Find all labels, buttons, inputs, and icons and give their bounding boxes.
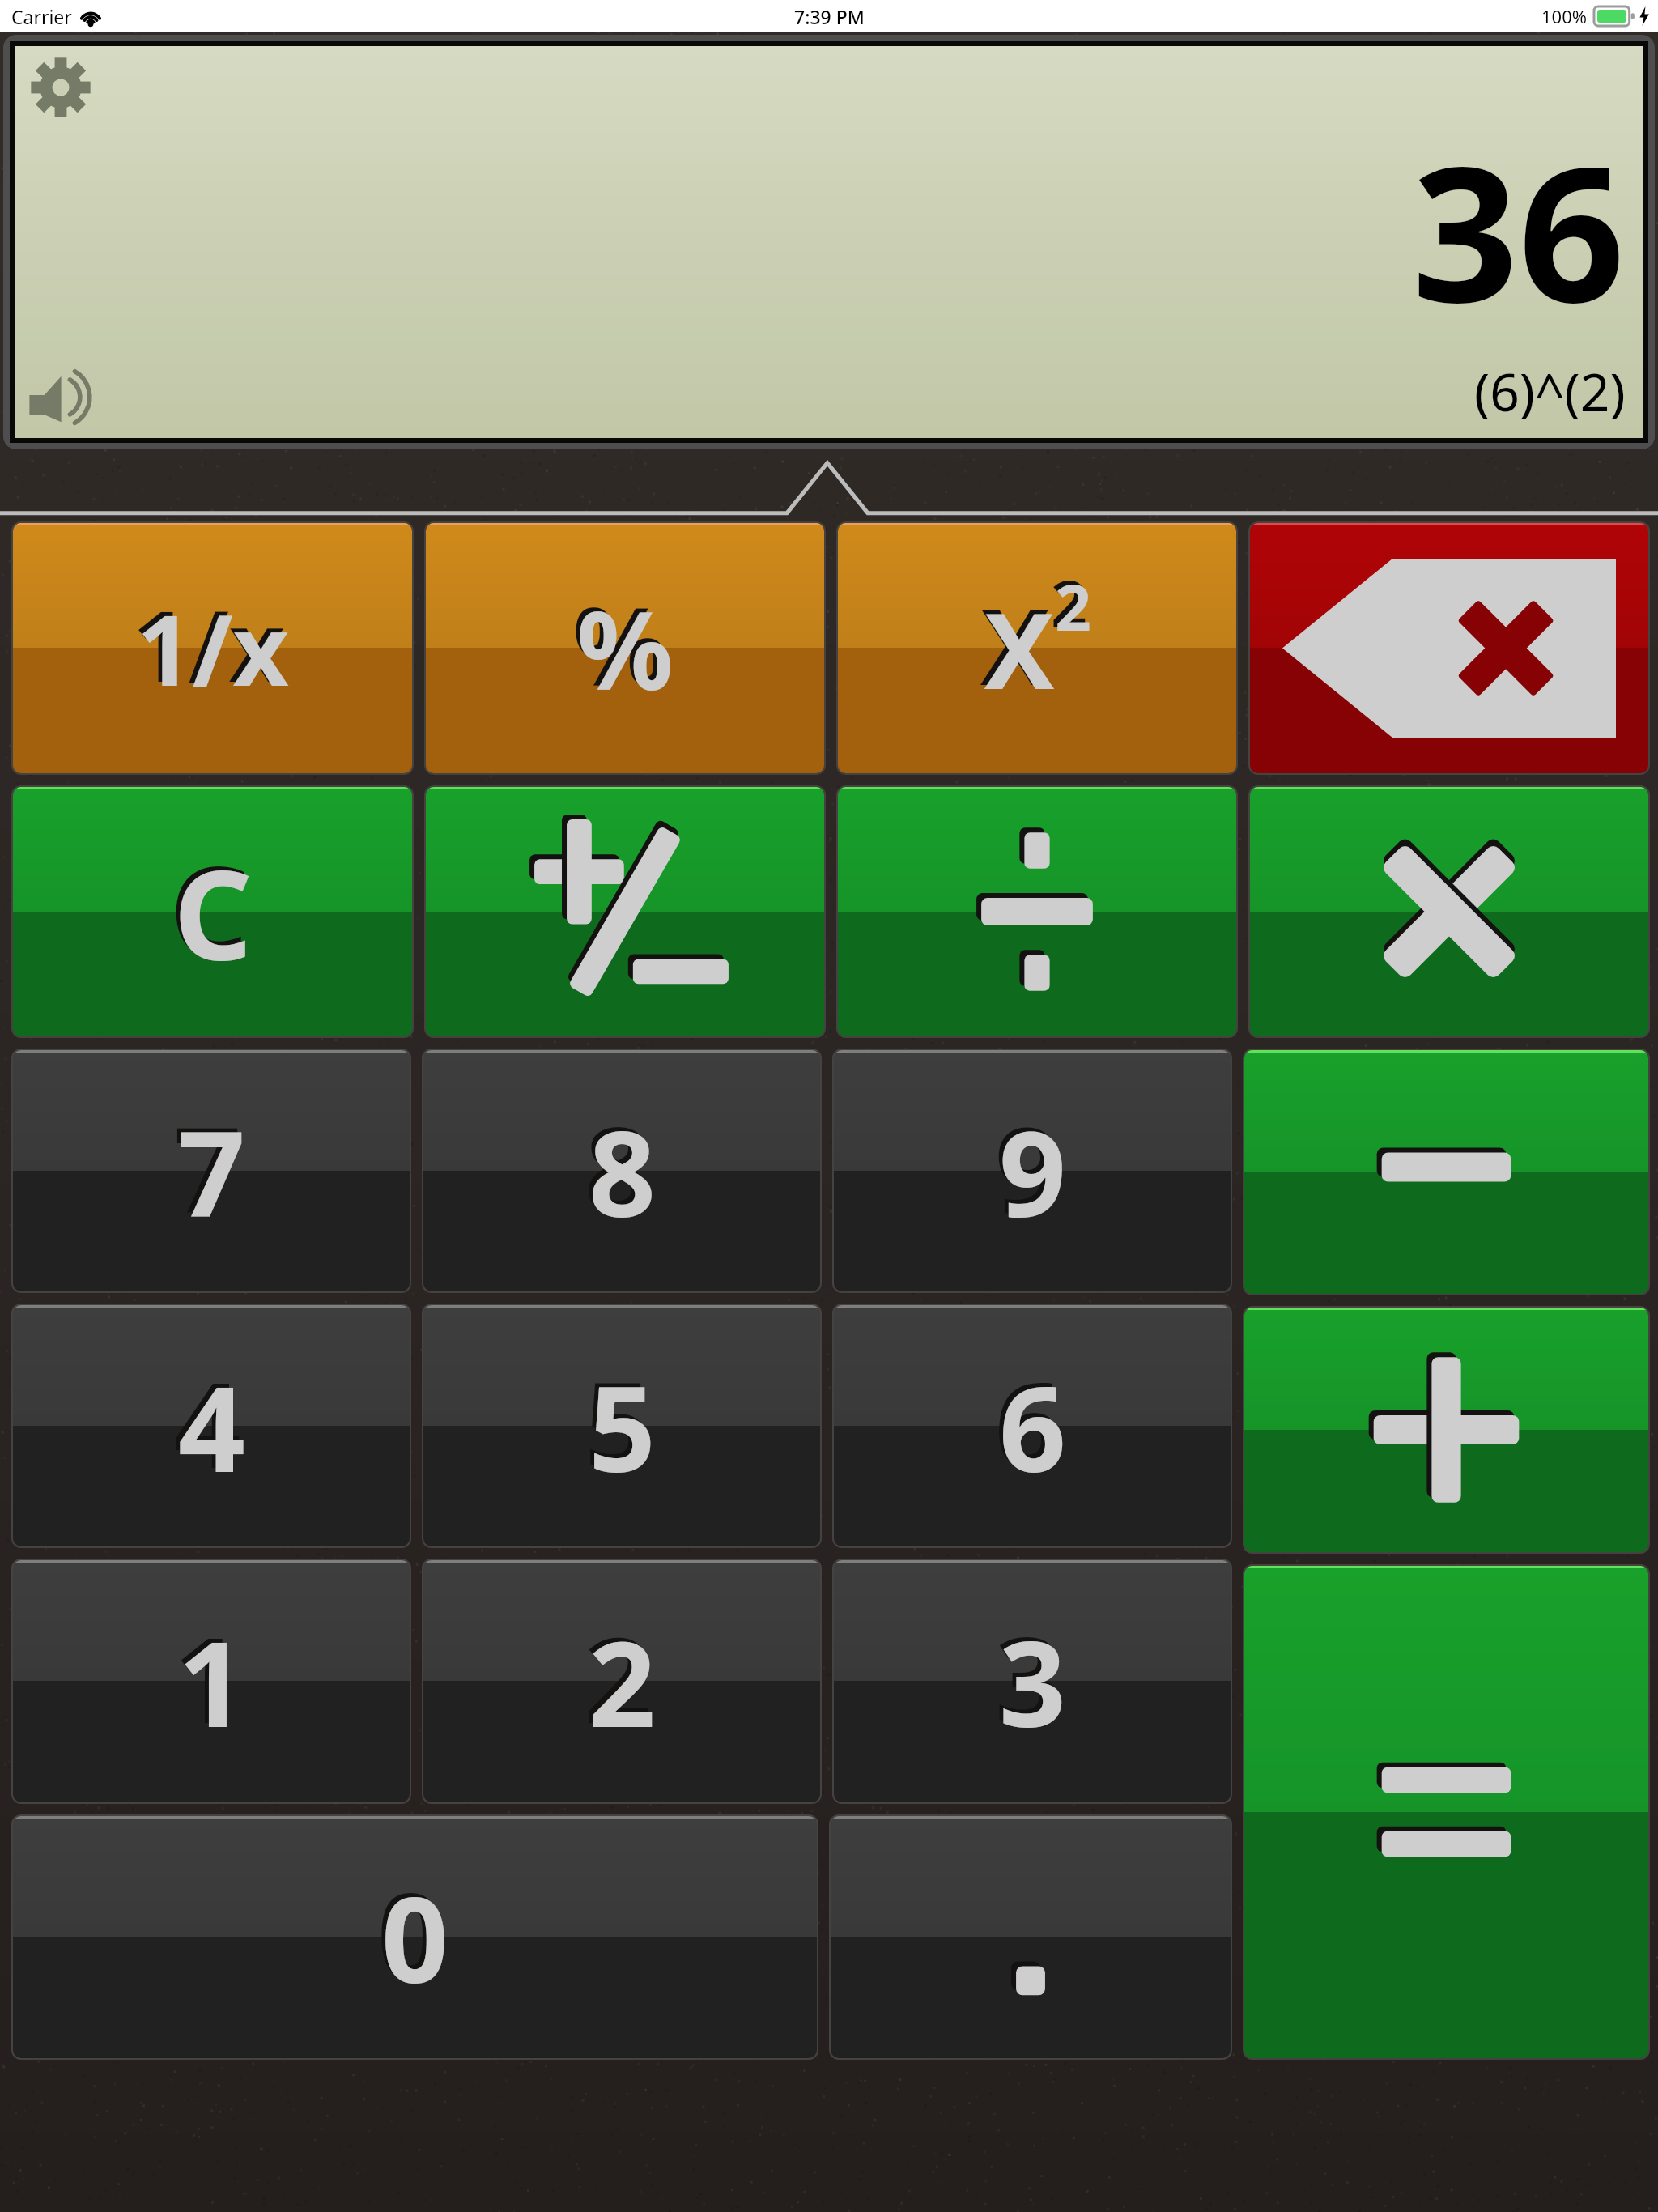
button[interactable]: One over x — [13, 523, 412, 773]
staticText: 100% — [1541, 4, 1588, 28]
staticText: 4 — [178, 1346, 245, 1506]
staticText: 8 — [585, 1087, 652, 1247]
button[interactable]: 2 — [423, 1560, 820, 1802]
staticText: X — [984, 576, 1055, 720]
staticText: Carrier — [11, 4, 72, 29]
staticText: 6 — [995, 1342, 1062, 1502]
staticText: 5 — [589, 1346, 656, 1506]
staticText: 4 — [174, 1342, 241, 1502]
button[interactable]: Decimal point — [831, 1816, 1231, 2058]
staticText: 2 — [585, 1597, 652, 1757]
button[interactable]: 1 — [13, 1560, 410, 1802]
button[interactable]: Plus minus — [426, 787, 824, 1036]
staticText: C — [169, 824, 249, 992]
staticText: 2 — [1055, 564, 1091, 649]
staticText: 1 — [174, 1597, 241, 1757]
staticText: 3 — [999, 1602, 1066, 1761]
button[interactable]: Equals — [1244, 1566, 1648, 2058]
staticText: C — [173, 828, 253, 996]
button[interactable]: 6 — [834, 1305, 1231, 1546]
button[interactable]: Settings — [29, 56, 92, 119]
button[interactable]: 9 — [834, 1050, 1231, 1291]
staticText: % — [572, 572, 670, 717]
button[interactable]: Clear — [13, 787, 412, 1036]
staticText: 7 — [178, 1091, 245, 1251]
staticText: 1 — [178, 1602, 245, 1761]
staticText: % — [576, 576, 674, 721]
button[interactable]: 3 — [834, 1560, 1231, 1802]
staticText: 9 — [995, 1087, 1062, 1247]
staticText: 2 — [589, 1602, 656, 1761]
staticText: 0 — [377, 1853, 444, 2013]
staticText: 1/x — [137, 582, 289, 714]
staticText: 1/x — [133, 578, 285, 710]
button[interactable]: Minus — [1244, 1050, 1648, 1294]
button[interactable]: 5 — [423, 1305, 820, 1546]
button[interactable]: Plus — [1244, 1308, 1648, 1552]
staticText: 3 — [995, 1597, 1062, 1757]
staticText: 7:39 PM — [794, 4, 865, 29]
button[interactable]: Multiply — [1250, 787, 1648, 1036]
button[interactable]: Backspace — [1250, 523, 1648, 773]
button[interactable]: Percent — [426, 523, 824, 773]
staticText: 2 — [1051, 559, 1087, 645]
staticText: X — [980, 572, 1051, 716]
button[interactable]: Sound — [28, 373, 92, 425]
staticText: (6)^(2) — [1474, 356, 1626, 427]
staticText: 0 — [381, 1857, 449, 2017]
staticText: 9 — [999, 1091, 1066, 1251]
staticText: 7 — [174, 1087, 241, 1247]
button[interactable]: X squared — [838, 523, 1236, 773]
button[interactable]: 8 — [423, 1050, 820, 1291]
button[interactable]: 7 — [13, 1050, 410, 1291]
staticText: 8 — [589, 1091, 656, 1251]
staticText: 36 — [1412, 103, 1626, 356]
staticText: 5 — [585, 1342, 652, 1502]
button[interactable]: 0 — [13, 1816, 817, 2058]
staticText: 6 — [999, 1346, 1066, 1506]
button[interactable]: 4 — [13, 1305, 410, 1546]
button[interactable]: Divide — [838, 787, 1236, 1036]
